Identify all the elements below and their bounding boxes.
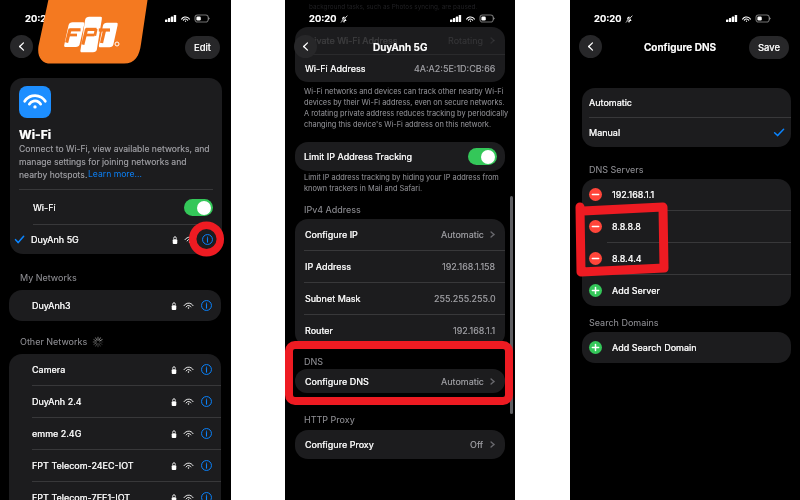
staticText: Add Server xyxy=(612,285,660,296)
staticText: DuyAnh3 xyxy=(32,300,71,311)
button[interactable]: Add Search Domain xyxy=(582,332,791,363)
staticText: Automatic xyxy=(589,97,632,108)
button[interactable]: Wi-Fi Address xyxy=(295,55,505,82)
staticText: 20:20 xyxy=(309,13,337,24)
staticText: DuyAnh 2.4 xyxy=(32,396,82,407)
staticText: Wi-Fi xyxy=(19,127,52,142)
staticText: Configure DNS xyxy=(305,376,369,387)
staticText: DuyAnh 5G xyxy=(373,41,428,53)
staticText: Edit xyxy=(194,42,211,53)
staticText: 8.8.4.4 xyxy=(612,253,642,264)
staticText: Configure DNS xyxy=(644,41,717,53)
staticText: Wi-Fi xyxy=(33,202,56,213)
staticText: Add Search Domain xyxy=(612,342,697,353)
staticText: Limit IP Address Tracking xyxy=(304,151,413,162)
button[interactable]: Configure Proxy xyxy=(295,430,505,459)
button[interactable]: IP Address xyxy=(295,251,505,282)
staticText: Camera xyxy=(32,364,66,375)
button[interactable]: 8.8.4.4 xyxy=(582,243,791,274)
button[interactable]: Configure IP xyxy=(295,219,505,250)
staticText: DNS xyxy=(304,356,324,367)
staticText: 192.168.1.1 xyxy=(612,189,655,200)
staticText: Other Networks xyxy=(20,336,88,347)
button[interactable]: Back xyxy=(10,35,33,58)
button[interactable]: Back xyxy=(294,35,317,58)
staticText: 20:20 xyxy=(594,13,622,24)
staticText: FPT Telecom-24EC-IOT xyxy=(32,460,134,471)
staticText: Manual xyxy=(589,127,621,138)
button[interactable]: Configure DNS xyxy=(295,369,505,393)
staticText: Wi-Fi networks and devices can track oth… xyxy=(304,87,509,129)
button[interactable]: Subnet Mask xyxy=(295,283,505,314)
button[interactable]: Learn more… xyxy=(88,169,142,179)
staticText: Private Wi-Fi Address xyxy=(305,35,398,46)
staticText: Automatic xyxy=(441,229,484,240)
staticText: FPT Telecom-7EE1-IOT xyxy=(32,492,131,500)
staticText: Automatic xyxy=(441,376,484,387)
staticText: Subnet Mask xyxy=(305,293,361,304)
staticText: Save xyxy=(758,42,780,53)
button[interactable]: Manual xyxy=(582,118,791,147)
button[interactable]: Save xyxy=(749,36,789,59)
staticText: DuyAnh 5G xyxy=(31,234,79,245)
button[interactable]: Add Server xyxy=(582,275,791,306)
staticText: HTTP Proxy xyxy=(304,414,355,425)
staticText: 4A:A2:5E:1D:CB:66 xyxy=(414,63,496,74)
staticText: 192.168.1.1 xyxy=(453,325,496,336)
button[interactable]: Limit IP Address Tracking xyxy=(295,142,505,171)
button[interactable]: FPT Telecom-7EE1-IOT xyxy=(9,482,221,500)
button[interactable]: Automatic xyxy=(582,88,791,117)
button[interactable]: 192.168.1.1 xyxy=(582,179,791,210)
staticText: Connect to Wi-Fi, view available network… xyxy=(19,144,210,180)
staticText: Wi-Fi Address xyxy=(305,63,366,74)
button[interactable]: emme 2.4G xyxy=(9,418,221,449)
staticText: background tasks, such as Photos syncing… xyxy=(309,3,478,11)
staticText: IPv4 Address xyxy=(304,204,361,215)
staticText: Rotating xyxy=(448,35,484,46)
button[interactable]: Router xyxy=(295,315,505,346)
button[interactable]: Camera xyxy=(9,354,221,385)
staticText: Search Domains xyxy=(589,317,659,328)
button[interactable]: DuyAnh 5G xyxy=(10,225,222,254)
button[interactable]: DuyAnh3 xyxy=(9,290,221,321)
staticText: DNS Servers xyxy=(589,164,644,175)
button[interactable]: DuyAnh 2.4 xyxy=(9,386,221,417)
button[interactable]: Toggle xyxy=(184,199,213,216)
staticText: 8.8.8.8 xyxy=(612,221,641,232)
staticText: Off xyxy=(470,439,484,450)
staticText: Router xyxy=(305,325,333,336)
button[interactable]: Edit xyxy=(185,36,220,59)
button[interactable]: Wi-Fi xyxy=(10,190,222,224)
staticText: Configure IP xyxy=(305,229,358,240)
staticText: 255.255.255.0 xyxy=(434,293,496,304)
staticText: 20:20 xyxy=(25,13,53,24)
staticText: emme 2.4G xyxy=(32,428,82,439)
staticText: Configure Proxy xyxy=(305,439,374,450)
staticText: 192.168.1.158 xyxy=(442,261,496,272)
button[interactable]: 8.8.8.8 xyxy=(582,211,791,242)
staticText: My Networks xyxy=(20,272,77,283)
button[interactable]: Toggle xyxy=(468,148,497,165)
staticText: Limit IP address tracking by hiding your… xyxy=(304,173,499,193)
button[interactable]: FPT Telecom-24EC-IOT xyxy=(9,450,221,481)
button[interactable]: Back xyxy=(579,35,602,58)
staticText: IP Address xyxy=(305,261,351,272)
